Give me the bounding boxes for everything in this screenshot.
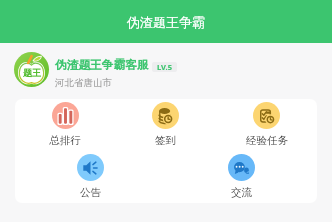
button[interactable]: 公告: [15, 154, 166, 199]
staticText: 伪渣题王争霸客服: [55, 58, 149, 73]
staticText: 交流: [231, 186, 252, 199]
staticText: LV.5: [157, 62, 172, 72]
button[interactable]: 总排行: [15, 102, 115, 147]
button[interactable]: 经验任务: [216, 102, 317, 147]
staticText: 题王: [23, 67, 41, 78]
staticText: 签到: [155, 134, 176, 147]
button[interactable]: 签到: [115, 102, 216, 147]
staticText: 总排行: [49, 134, 81, 147]
staticText: 公告: [80, 186, 101, 199]
staticText: 经验任务: [246, 134, 288, 147]
button[interactable]: 交流: [166, 154, 317, 199]
button[interactable]: 题王: [0, 43, 332, 99]
staticText: 伪渣题王争霸: [127, 14, 205, 30]
staticText: 河北省唐山市: [55, 77, 112, 89]
